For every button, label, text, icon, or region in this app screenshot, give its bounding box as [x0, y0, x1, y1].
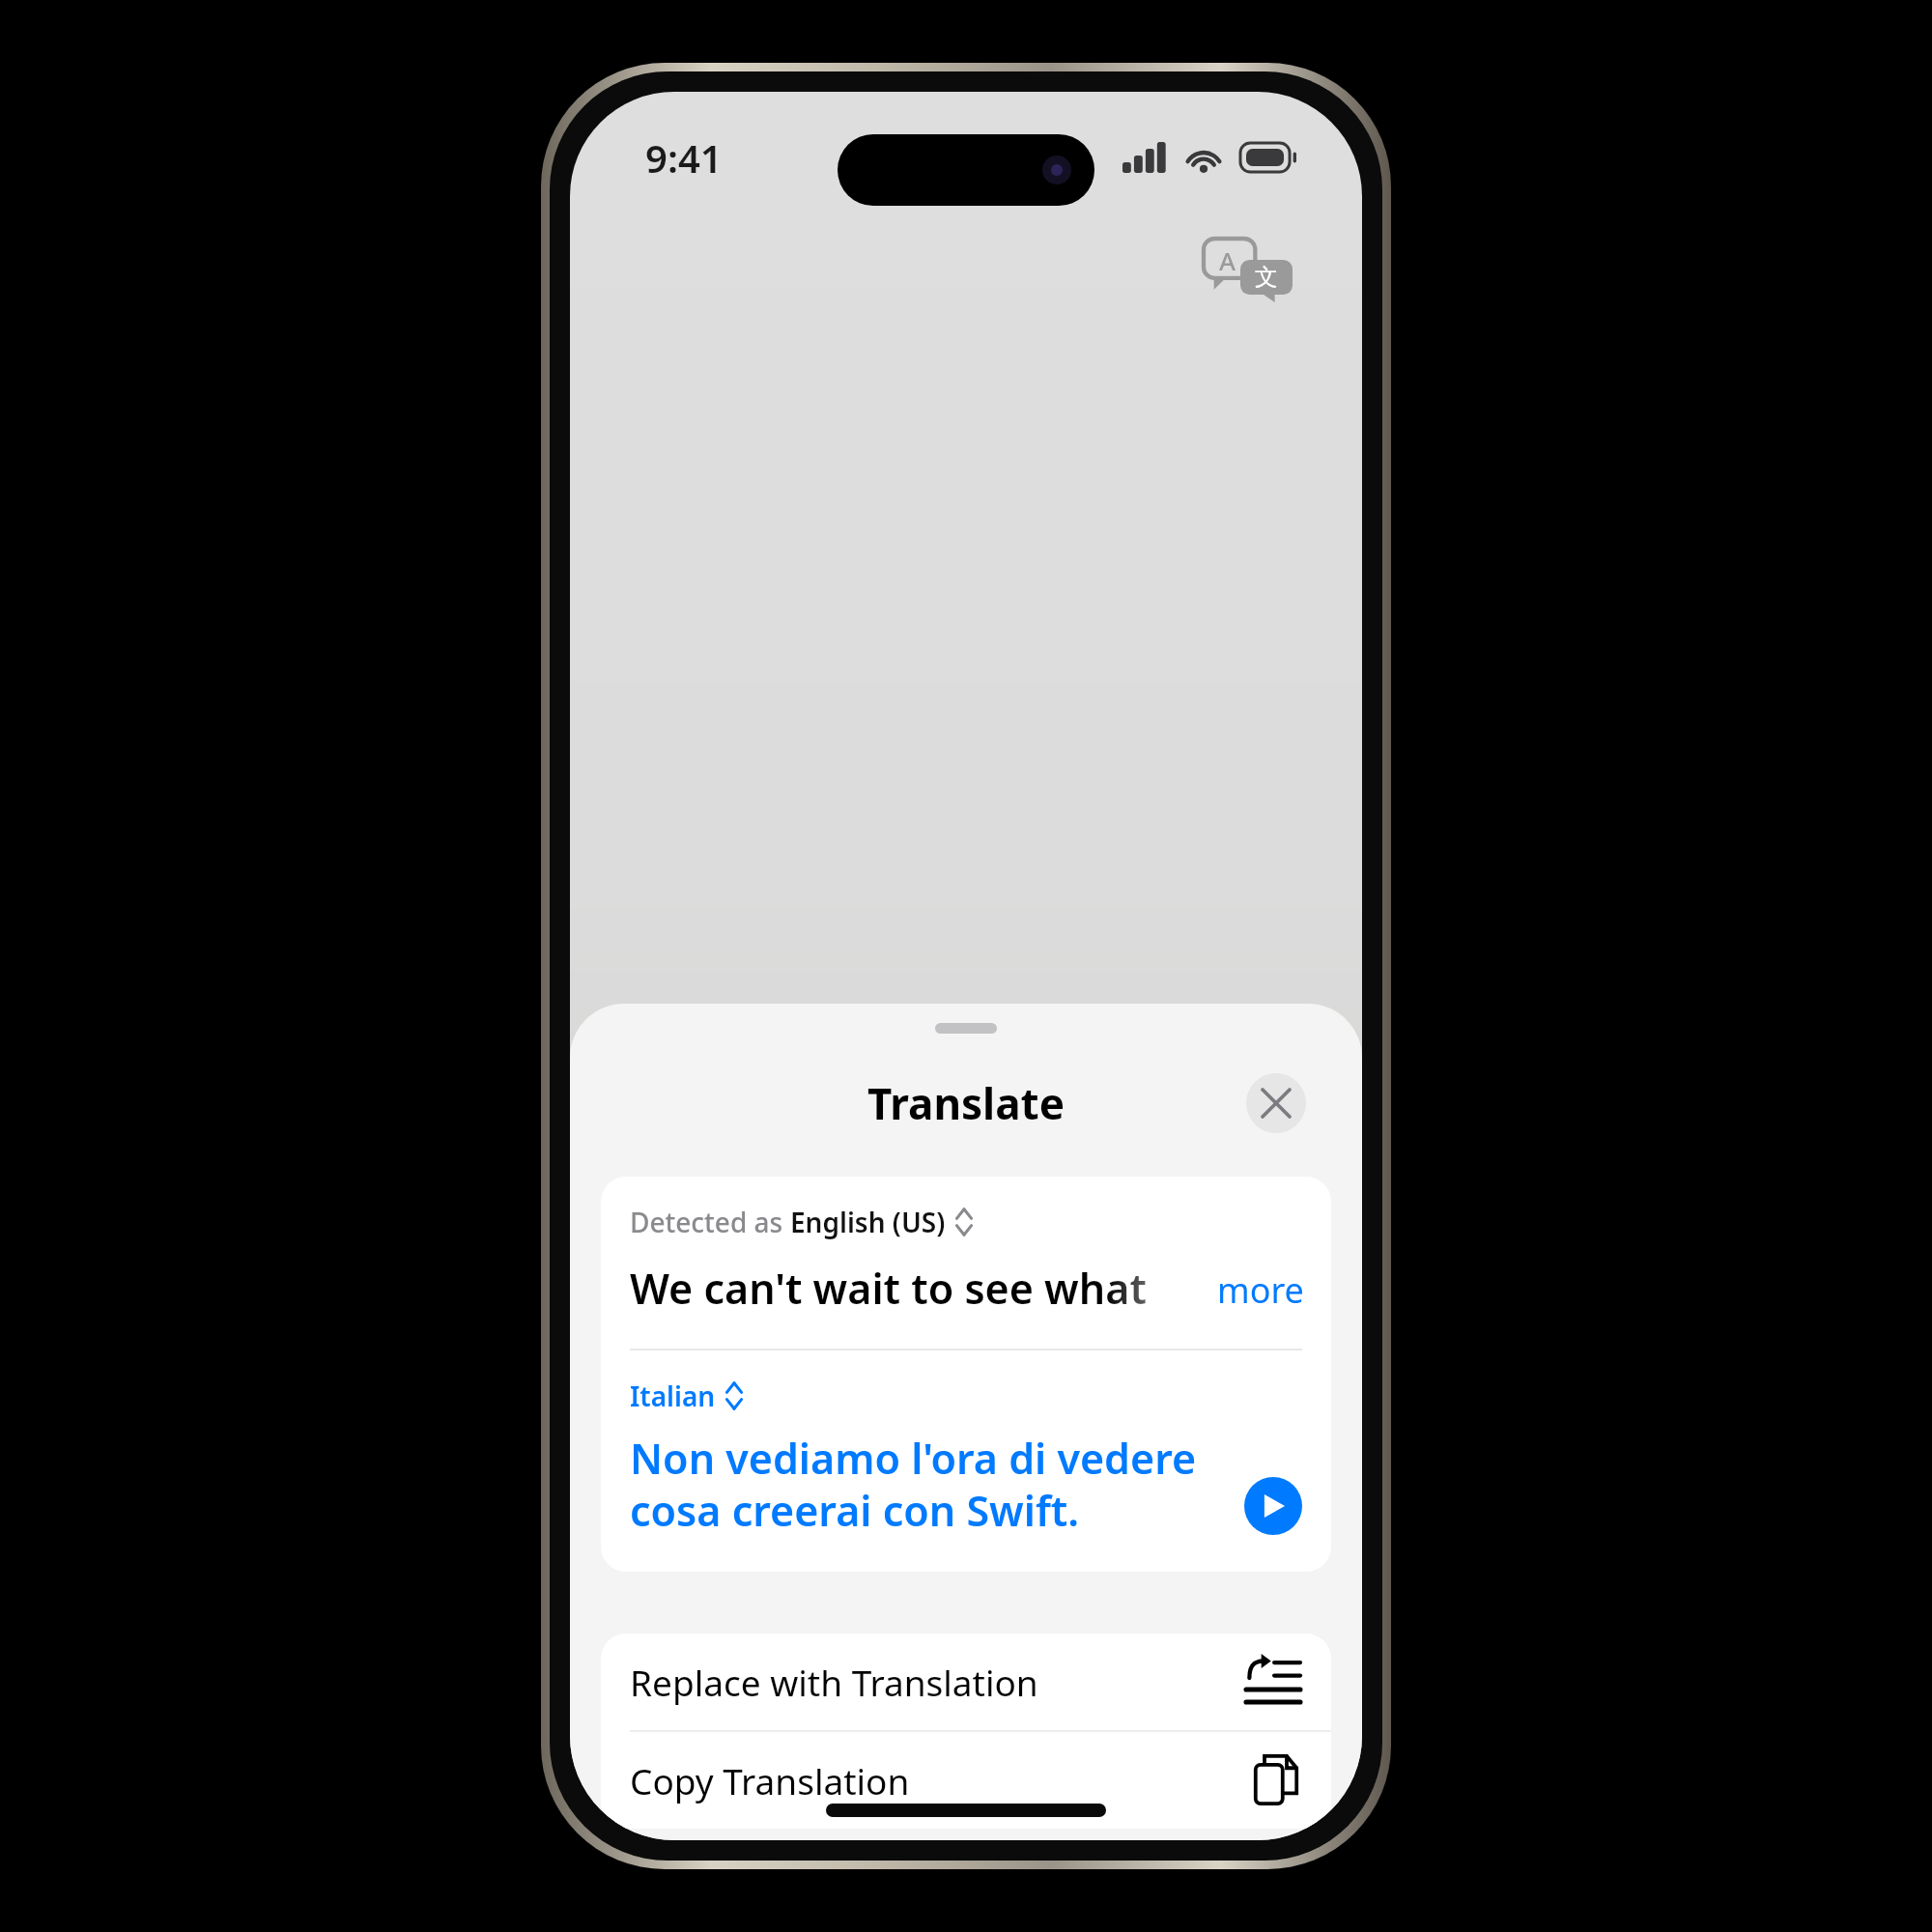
staticText: English (US) — [790, 1204, 946, 1240]
staticText: Detected as — [630, 1204, 790, 1240]
staticText: Translate — [867, 1074, 1065, 1132]
button[interactable]: Play translation — [1244, 1477, 1302, 1535]
button[interactable]: Italian — [630, 1378, 744, 1414]
staticText: 9:41 — [645, 131, 723, 184]
staticText: A — [1219, 243, 1236, 277]
button[interactable]: Close — [1246, 1073, 1306, 1133]
staticText: Copy Translation — [630, 1756, 1252, 1804]
staticText: 文 — [1255, 263, 1278, 292]
staticText: We can't wait to see what you — [630, 1260, 1211, 1317]
button[interactable]: more — [1217, 1266, 1304, 1314]
staticText: Non vediamo l'ora di vedere cosa creerai… — [630, 1430, 1233, 1539]
button[interactable]: Replace with Translation — [601, 1634, 1331, 1730]
button[interactable]: Copy Translation — [601, 1732, 1331, 1829]
staticText: more — [1217, 1266, 1304, 1314]
staticText: Replace with Translation — [630, 1658, 1246, 1706]
staticText: Italian — [630, 1378, 716, 1414]
button[interactable]: Detected as — [630, 1204, 974, 1240]
button[interactable]: Translate — [1204, 239, 1293, 302]
